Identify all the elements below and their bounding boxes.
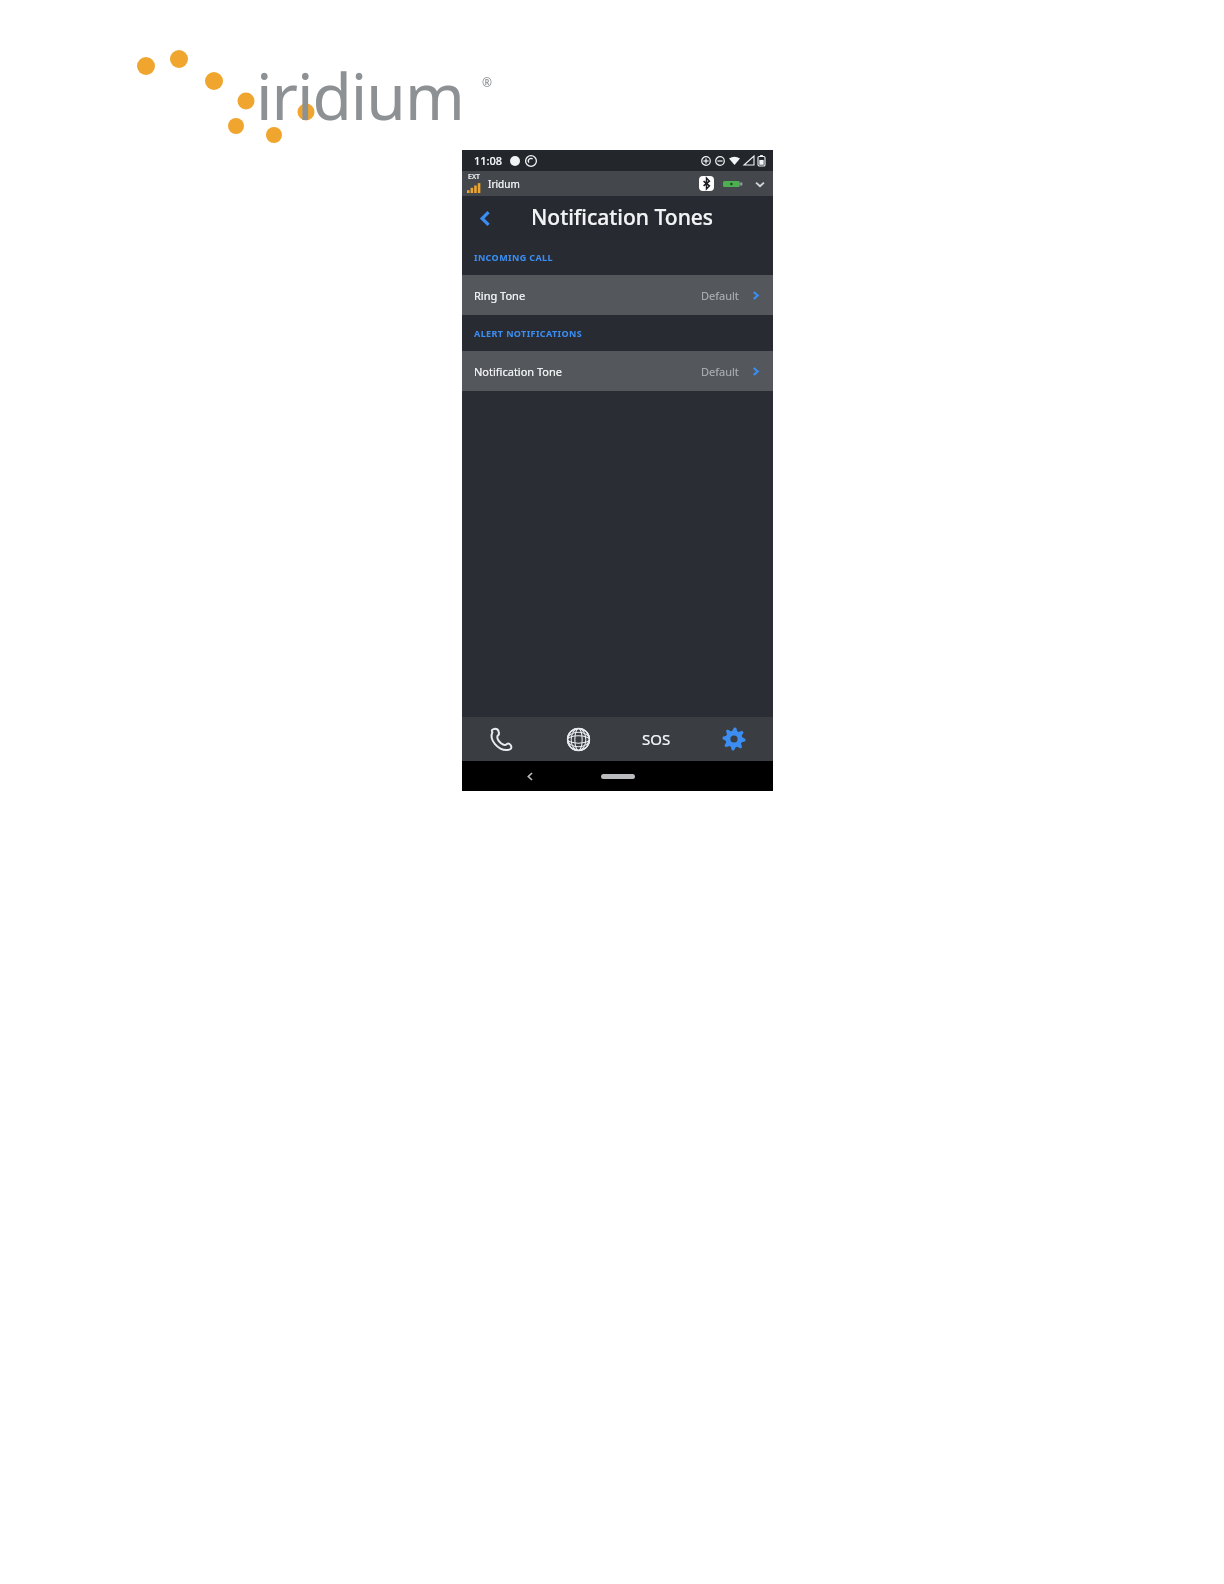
staticText: Iridum [488,177,520,191]
button[interactable]: Back [471,204,499,232]
staticText: Notification Tone [474,364,563,379]
staticText: EXT [468,172,480,182]
button[interactable]: Ring Tone [462,275,773,315]
button[interactable]: SOS [617,717,695,761]
staticText: Default [701,288,739,303]
staticText: SOS [642,729,671,749]
staticText: 11:08 [474,153,503,168]
button[interactable]: Settings [695,717,773,761]
staticText: ® [482,74,492,90]
staticText: Notification Tones [531,203,714,232]
button[interactable]: Notification Tone [462,351,773,391]
button[interactable]: Phone [462,717,539,761]
staticText: iridium [256,52,464,139]
staticText: Ring Tone [474,288,526,303]
button[interactable]: Network [539,717,617,761]
staticText: Default [701,364,739,379]
staticText: INCOMING CALL [474,251,553,263]
staticText: ALERT NOTIFICATIONS [474,327,583,339]
